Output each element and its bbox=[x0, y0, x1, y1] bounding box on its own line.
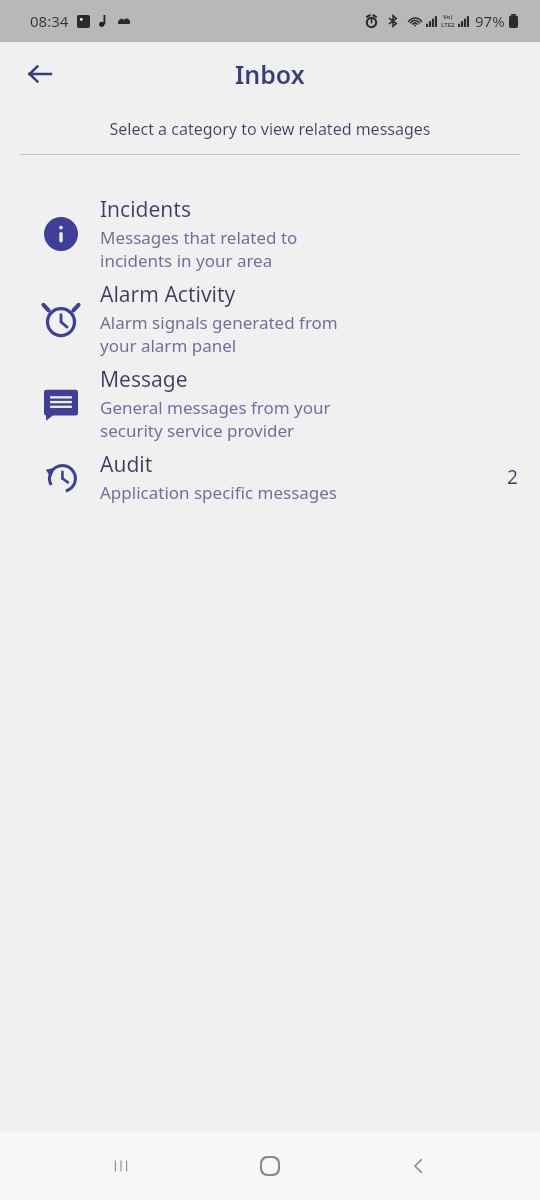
staticText: Application specific messages bbox=[100, 481, 338, 504]
staticText: 97% bbox=[475, 11, 505, 31]
staticText: Vo) bbox=[443, 13, 453, 21]
button[interactable]: Message bbox=[0, 361, 540, 446]
staticText: Message bbox=[100, 365, 188, 394]
staticText: security service provider bbox=[100, 419, 295, 442]
staticText: incidents in your area bbox=[100, 249, 273, 272]
staticText: Select a category to view related messag… bbox=[0, 118, 540, 140]
button[interactable]: Alarm Activity bbox=[0, 276, 540, 361]
staticText: LTE2 bbox=[441, 21, 455, 29]
button[interactable]: Recent apps bbox=[93, 1138, 149, 1194]
staticText: Audit bbox=[100, 450, 153, 479]
button[interactable]: Back bbox=[14, 48, 66, 100]
staticText: your alarm panel bbox=[100, 334, 237, 357]
staticText: General messages from your bbox=[100, 396, 331, 419]
button[interactable]: Incidents bbox=[0, 191, 540, 276]
button[interactable]: Back bbox=[391, 1138, 447, 1194]
staticText: 2 bbox=[507, 464, 518, 490]
button[interactable]: Home bbox=[242, 1138, 298, 1194]
staticText: Alarm signals generated from bbox=[100, 311, 338, 334]
staticText: Inbox bbox=[235, 57, 305, 91]
staticText: Incidents bbox=[100, 195, 191, 224]
staticText: 08:34 bbox=[30, 11, 69, 31]
staticText: Messages that related to bbox=[100, 226, 298, 249]
staticText: Alarm Activity bbox=[100, 280, 236, 309]
button[interactable]: Audit bbox=[0, 446, 540, 508]
